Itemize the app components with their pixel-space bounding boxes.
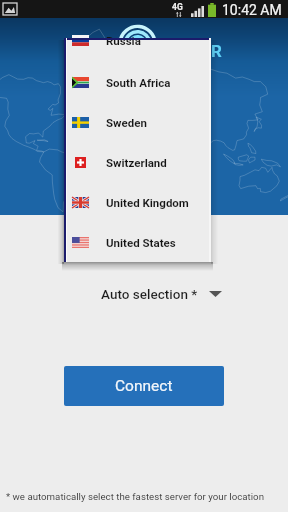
staticText: Auto selection * [101, 286, 198, 302]
staticText: Russia [106, 34, 141, 47]
staticText: Sweden [106, 116, 147, 129]
button[interactable]: Russia [64, 38, 211, 62]
staticText: * we automatically select the fastest se… [6, 491, 264, 502]
staticText: Connect [115, 377, 173, 395]
button[interactable]: United States [64, 222, 211, 262]
staticText: R [211, 41, 222, 61]
button[interactable]: Switzerland [64, 142, 211, 182]
staticText: South Africa [106, 76, 171, 89]
staticText: United States [106, 236, 176, 249]
button[interactable]: Connect [64, 366, 224, 406]
button[interactable]: United Kingdom [64, 182, 211, 222]
staticText: United Kingdom [106, 196, 189, 209]
button[interactable]: Auto selection * [95, 283, 228, 305]
staticText: Switzerland [106, 156, 167, 169]
button[interactable]: South Africa [64, 62, 211, 102]
staticText: 10:42 AM [222, 2, 282, 18]
staticText: 4G [172, 2, 183, 12]
button[interactable]: Sweden [64, 102, 211, 142]
